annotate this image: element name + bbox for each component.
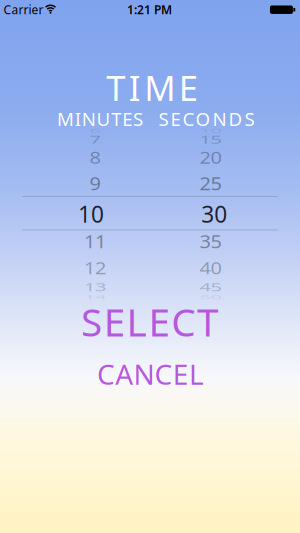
staticText: 20: [199, 144, 221, 171]
staticText: Carrier: [3, 1, 43, 17]
staticText: 8: [89, 144, 100, 171]
staticText: 9: [89, 170, 100, 196]
staticText: 7: [89, 126, 100, 153]
staticText: 45: [199, 274, 221, 300]
button[interactable]: Seconds picker: [150, 128, 277, 299]
staticText: 12: [84, 255, 106, 281]
staticText: TIME: [106, 64, 198, 110]
button[interactable]: SELECT: [59, 299, 239, 343]
staticText: 25: [199, 170, 221, 196]
button[interactable]: Minutes picker: [23, 128, 150, 299]
staticText: 10: [78, 199, 104, 229]
staticText: 11: [84, 228, 106, 254]
staticText: 1:21 PM: [127, 1, 172, 17]
staticText: SECONDS: [158, 106, 254, 131]
staticText: 50: [199, 284, 221, 310]
staticText: CANCEL: [97, 355, 204, 393]
button[interactable]: CANCEL: [75, 357, 225, 391]
staticText: MINUTES: [57, 106, 143, 131]
staticText: 10: [199, 117, 221, 144]
staticText: SELECT: [81, 296, 218, 347]
staticText: 35: [199, 228, 221, 254]
staticText: 15: [199, 126, 221, 153]
staticText: 30: [201, 199, 227, 229]
staticText: 13: [84, 274, 106, 300]
staticText: 40: [199, 255, 221, 281]
staticText: 6: [89, 117, 100, 144]
staticText: 14: [84, 284, 106, 310]
